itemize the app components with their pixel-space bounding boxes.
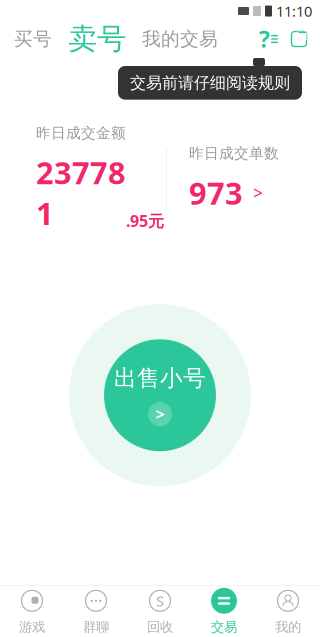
staticText: 交易 bbox=[211, 619, 237, 635]
staticText: 出售小号 bbox=[114, 364, 206, 392]
staticText: > bbox=[253, 181, 263, 204]
button[interactable]: 群聊 bbox=[64, 585, 128, 637]
staticText: 买号 bbox=[14, 27, 52, 50]
staticText: 群聊 bbox=[83, 619, 109, 635]
staticText: 卖号 bbox=[68, 21, 126, 57]
staticText: 游戏 bbox=[19, 619, 45, 635]
button[interactable]: 昨日成交单数 bbox=[167, 138, 314, 219]
staticText: 11:10 bbox=[276, 1, 312, 21]
button[interactable]: 卖号 bbox=[60, 19, 134, 59]
staticText: 昨日成交金额 bbox=[36, 124, 126, 142]
staticText: 237781 bbox=[36, 152, 126, 233]
button[interactable]: 昨日成交金额 bbox=[36, 118, 166, 239]
button[interactable]: 出售小号 bbox=[60, 295, 260, 495]
staticText: 973 bbox=[189, 172, 243, 213]
staticText: > bbox=[155, 403, 164, 425]
button[interactable]: 游戏 bbox=[0, 585, 64, 637]
staticText: .95元 bbox=[126, 210, 164, 231]
staticText: S bbox=[156, 591, 164, 611]
button[interactable]: 帮助 bbox=[253, 18, 284, 60]
staticText: 我的交易 bbox=[142, 27, 218, 50]
button[interactable]: 买号 bbox=[6, 21, 60, 56]
button[interactable]: 我的交易 bbox=[134, 21, 226, 56]
staticText: 交易前请仔细阅读规则 bbox=[130, 73, 290, 93]
button[interactable]: 交易 bbox=[192, 585, 256, 637]
button[interactable]: 我的 bbox=[256, 585, 320, 637]
staticText: ? bbox=[259, 24, 270, 54]
staticText: 昨日成交单数 bbox=[189, 144, 279, 162]
staticText: 回收 bbox=[147, 619, 173, 635]
button[interactable]: S bbox=[128, 585, 192, 637]
staticText: 我的 bbox=[275, 619, 301, 635]
button[interactable]: 分享 bbox=[284, 24, 314, 54]
